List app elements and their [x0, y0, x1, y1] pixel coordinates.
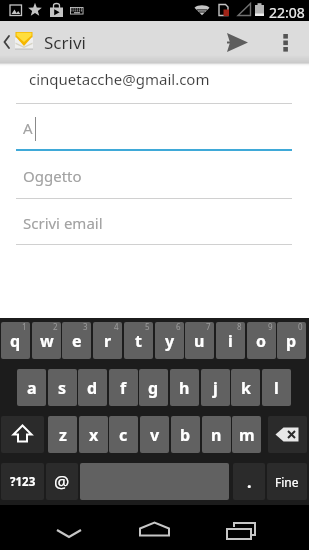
- staticText: 5: [145, 322, 150, 332]
- button[interactable]: s: [48, 369, 77, 406]
- staticText: l: [274, 377, 279, 399]
- button[interactable]: Recent apps: [216, 509, 264, 547]
- staticText: 0: [298, 322, 303, 332]
- staticText: k: [241, 377, 251, 399]
- button[interactable]: r: [93, 322, 122, 359]
- staticText: cinquetacche@gmail.com: [29, 69, 210, 89]
- staticText: f: [120, 377, 127, 399]
- staticText: w: [40, 330, 54, 352]
- button[interactable]: .: [233, 463, 265, 500]
- staticText: o: [256, 330, 267, 352]
- button[interactable]: y: [155, 322, 184, 359]
- staticText: u: [194, 330, 205, 352]
- button[interactable]: h: [170, 369, 199, 406]
- button[interactable]: q: [1, 322, 30, 359]
- staticText: p: [286, 330, 297, 352]
- button[interactable]: Backspace: [268, 416, 307, 453]
- staticText: Scrivi: [44, 31, 86, 54]
- staticText: 4: [114, 322, 119, 332]
- staticText: Scrivi email: [23, 213, 103, 233]
- button[interactable]: x: [79, 416, 108, 453]
- staticText: t: [135, 330, 142, 352]
- button[interactable]: e: [62, 322, 91, 359]
- staticText: d: [87, 377, 98, 399]
- button[interactable]: u: [185, 322, 214, 359]
- staticText: 6: [176, 322, 181, 332]
- button[interactable]: b: [171, 416, 200, 453]
- button[interactable]: Shift: [1, 416, 44, 453]
- button[interactable]: z: [48, 416, 77, 453]
- button[interactable]: Home: [130, 509, 178, 547]
- staticText: v: [150, 424, 160, 446]
- button[interactable]: v: [140, 416, 169, 453]
- staticText: s: [58, 377, 67, 399]
- button[interactable]: ?123: [1, 463, 44, 500]
- staticText: Fine: [275, 474, 299, 490]
- staticText: 1: [22, 322, 27, 332]
- staticText: j: [213, 377, 218, 399]
- button[interactable]: t: [124, 322, 153, 359]
- staticText: i: [228, 330, 233, 352]
- button[interactable]: Fine: [267, 463, 307, 500]
- button[interactable]: Back to inbox: [0, 21, 82, 63]
- staticText: m: [239, 424, 255, 446]
- staticText: 3: [83, 322, 88, 332]
- button[interactable]: p: [277, 322, 306, 359]
- staticText: y: [165, 330, 175, 352]
- button[interactable]: d: [78, 369, 107, 406]
- button[interactable]: Send: [217, 22, 258, 62]
- staticText: c: [119, 424, 128, 446]
- staticText: n: [211, 424, 222, 446]
- staticText: x: [89, 424, 99, 446]
- button[interactable]: i: [216, 322, 245, 359]
- staticText: g: [148, 377, 159, 399]
- staticText: z: [59, 424, 67, 446]
- staticText: 7: [206, 322, 211, 332]
- button[interactable]: @: [46, 463, 78, 500]
- staticText: 8: [237, 322, 242, 332]
- staticText: A: [23, 118, 33, 138]
- staticText: h: [179, 377, 190, 399]
- staticText: b: [180, 424, 191, 446]
- staticText: Oggetto: [23, 166, 82, 186]
- staticText: 2: [53, 322, 58, 332]
- button[interactable]: n: [202, 416, 231, 453]
- button[interactable]: w: [32, 322, 61, 359]
- staticText: @: [54, 470, 70, 493]
- staticText: q: [10, 330, 21, 352]
- button[interactable]: a: [17, 369, 46, 406]
- staticText: .: [247, 471, 252, 493]
- button[interactable]: Hide keyboard: [45, 509, 93, 547]
- staticText: e: [72, 330, 82, 352]
- button[interactable]: g: [139, 369, 168, 406]
- button[interactable]: o: [247, 322, 276, 359]
- staticText: ?123: [10, 474, 36, 490]
- staticText: a: [27, 377, 37, 399]
- button[interactable]: f: [109, 369, 138, 406]
- staticText: 22:08: [269, 3, 305, 22]
- button[interactable]: j: [201, 369, 230, 406]
- button[interactable]: k: [231, 369, 260, 406]
- button[interactable]: More options: [266, 22, 306, 62]
- button[interactable]: c: [109, 416, 138, 453]
- button[interactable]: l: [262, 369, 291, 406]
- button[interactable]: m: [232, 416, 261, 453]
- staticText: 9: [268, 322, 273, 332]
- staticText: r: [104, 330, 112, 352]
